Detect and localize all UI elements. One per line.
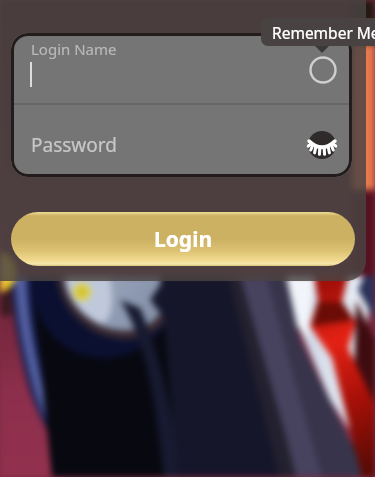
button[interactable]: Login xyxy=(11,212,355,266)
staticText: Login xyxy=(154,225,213,254)
staticText: Remember Me xyxy=(272,22,375,43)
button[interactable]: Remember Me xyxy=(309,56,337,84)
button[interactable]: Remember Me xyxy=(261,18,375,46)
button[interactable]: Show password xyxy=(308,131,336,159)
staticText: Login Name xyxy=(31,39,117,59)
staticText: Password xyxy=(31,132,117,158)
